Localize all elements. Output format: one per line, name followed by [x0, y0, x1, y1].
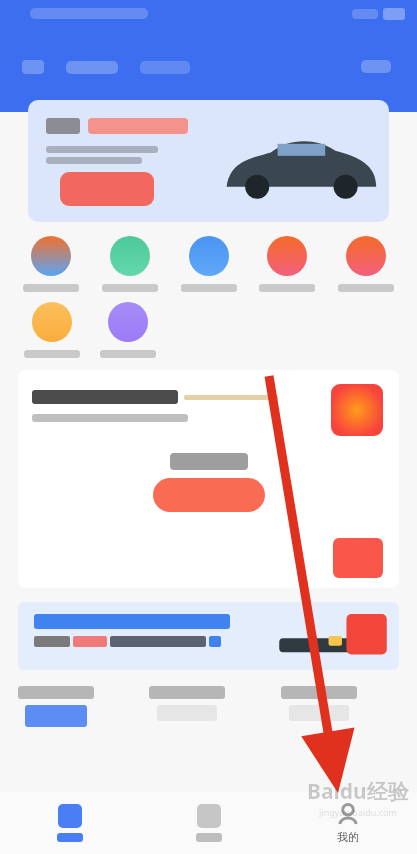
staticText: Baidu经验	[307, 777, 409, 806]
button[interactable]: Service entry	[90, 302, 166, 358]
button[interactable]	[18, 370, 399, 588]
button[interactable]	[66, 61, 118, 74]
button[interactable]: Service entry	[171, 236, 247, 292]
button[interactable]: Service entry	[328, 236, 404, 292]
button[interactable]: More	[361, 60, 391, 73]
button[interactable]: Service entry	[249, 236, 325, 292]
button[interactable]	[149, 686, 267, 756]
button[interactable]: Service entry	[14, 302, 90, 358]
button[interactable]: Discover	[139, 792, 278, 854]
button[interactable]	[140, 61, 190, 74]
button[interactable]	[281, 686, 399, 756]
button[interactable]	[18, 602, 399, 670]
button[interactable]	[28, 100, 389, 222]
staticText: 我的	[337, 830, 359, 844]
button[interactable]: Service entry	[13, 236, 89, 292]
button[interactable]: Service entry	[92, 236, 168, 292]
button[interactable]: Scan	[22, 60, 44, 74]
button[interactable]	[153, 478, 265, 512]
button[interactable]	[18, 686, 135, 756]
button[interactable]: 我的	[278, 792, 417, 854]
button[interactable]: Home	[0, 792, 139, 854]
staticText: jingyan.baidu.com	[319, 806, 397, 818]
button[interactable]	[60, 172, 154, 206]
